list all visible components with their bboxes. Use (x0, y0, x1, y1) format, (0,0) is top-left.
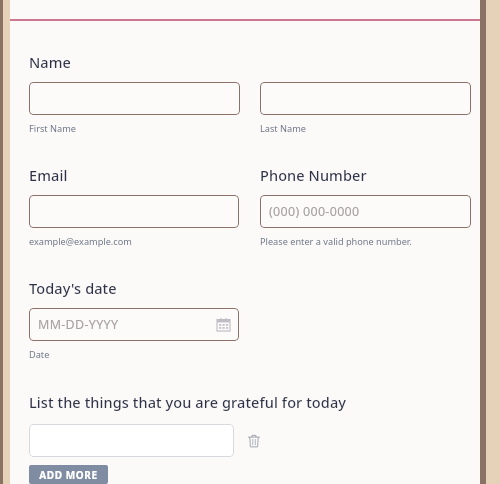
staticText: Name (29, 52, 72, 72)
staticText: ADD MORE (39, 468, 98, 482)
staticText: (000) 000-0000 (269, 203, 360, 220)
staticText: Email (29, 165, 260, 185)
staticText: example@example.com (29, 235, 260, 248)
staticText: Today's date (29, 278, 117, 298)
button[interactable]: MM-DD-YYYY (29, 308, 239, 341)
staticText: Phone Number (260, 165, 367, 185)
staticText: Please enter a valid phone number. (260, 235, 412, 248)
staticText: First Name (29, 122, 260, 135)
other: Delete item (247, 434, 261, 448)
button[interactable]: (000) 000-0000 (260, 195, 471, 228)
button[interactable] (29, 424, 234, 457)
other: Pick date (217, 318, 230, 331)
button[interactable] (29, 195, 239, 228)
button[interactable]: ADD MORE (29, 465, 108, 484)
staticText: Last Name (260, 122, 306, 135)
button[interactable] (260, 82, 471, 115)
staticText: MM-DD-YYYY (38, 316, 119, 333)
staticText: List the things that you are grateful fo… (29, 392, 347, 412)
button[interactable]: Delete item (243, 430, 265, 452)
staticText: Date (29, 348, 50, 361)
button[interactable] (29, 82, 240, 115)
